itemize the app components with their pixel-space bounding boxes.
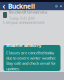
staticText: ‹ (2, 1, 5, 11)
staticText: Campus announcement (3, 19, 44, 25)
button[interactable]: ‹ (2, 2, 6, 10)
staticText: Weather advisory (6, 43, 41, 48)
staticText: Today 9:41 AM (9, 15, 35, 21)
staticText: Bucknell University (9, 9, 47, 14)
staticText: Bucknell (8, 2, 35, 11)
staticText: Classes are cancelled today due to sever… (6, 50, 56, 71)
